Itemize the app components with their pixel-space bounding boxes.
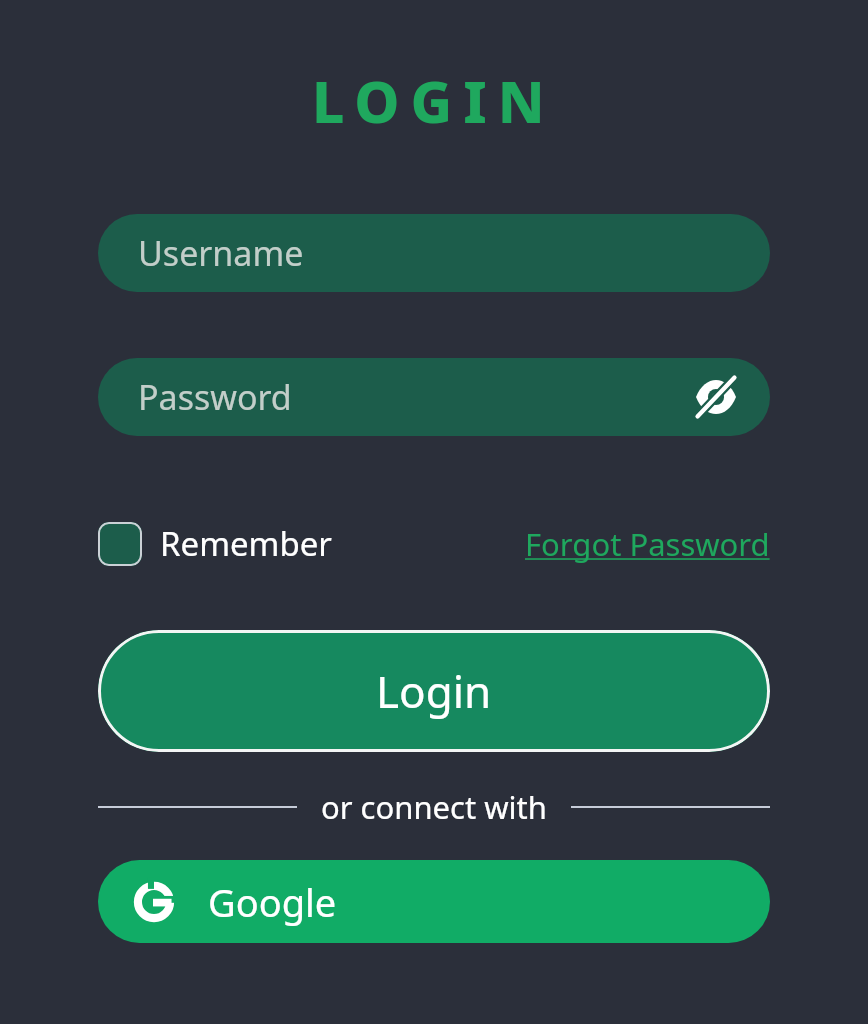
staticText: Login	[376, 661, 492, 721]
button[interactable]: Forgot Password	[525, 523, 770, 565]
staticText: Username	[138, 230, 304, 276]
staticText: Remember	[160, 521, 332, 566]
button[interactable]: Username	[98, 214, 770, 292]
staticText: Google	[208, 876, 337, 928]
staticText: Password	[138, 374, 292, 420]
button[interactable]: Password	[98, 358, 770, 436]
button[interactable]: Google	[98, 860, 770, 943]
staticText: Forgot Password	[525, 523, 770, 565]
button[interactable]: Remember	[98, 521, 332, 566]
staticText: LOGIN	[312, 62, 556, 140]
staticText: or connect with	[321, 786, 547, 828]
button[interactable]: Show password	[688, 369, 744, 425]
button[interactable]: Login	[98, 630, 770, 752]
